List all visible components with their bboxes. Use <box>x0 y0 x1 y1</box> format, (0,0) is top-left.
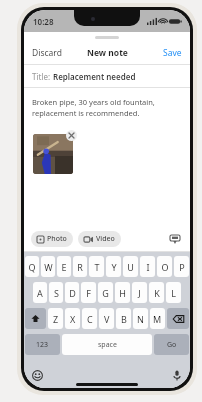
staticText: G <box>102 287 109 299</box>
button[interactable]: F <box>81 282 96 303</box>
staticText: space <box>98 340 117 350</box>
staticText: A <box>37 287 43 299</box>
button[interactable]: K <box>149 282 164 303</box>
staticText: T <box>94 261 100 273</box>
button[interactable]: Dictation <box>171 368 183 383</box>
staticText: J <box>138 287 141 299</box>
staticText: 123 <box>36 340 49 350</box>
staticText: I <box>146 261 150 273</box>
button[interactable]: M <box>150 308 165 329</box>
staticText: E <box>61 261 67 273</box>
staticText: D <box>69 287 76 299</box>
button[interactable]: N <box>133 308 148 329</box>
button[interactable]: H <box>115 282 130 303</box>
staticText: Y <box>111 261 117 273</box>
staticText: Broken pipe, 30 years old fountain, repl… <box>32 97 182 118</box>
button[interactable]: 123 <box>25 334 60 355</box>
button[interactable]: B <box>116 308 131 329</box>
button[interactable]: X <box>65 308 80 329</box>
button[interactable]: D <box>65 282 79 303</box>
staticText: Photo <box>47 234 67 244</box>
button[interactable]: Remove photo <box>66 130 77 141</box>
staticText: S <box>54 287 59 299</box>
button[interactable]: V <box>99 308 114 329</box>
staticText: Save <box>163 47 182 59</box>
button[interactable]: Discard <box>24 44 68 62</box>
staticText: Z <box>53 313 59 325</box>
button[interactable]: T <box>89 256 104 277</box>
button[interactable]: Photo <box>31 231 73 247</box>
staticText: R <box>77 261 83 273</box>
button[interactable]: P <box>174 256 189 277</box>
button[interactable]: Z <box>48 308 63 329</box>
staticText: K <box>154 287 160 299</box>
button[interactable]: Y <box>106 256 121 277</box>
staticText: L <box>171 287 176 299</box>
staticText: U <box>127 261 134 273</box>
staticText: 10:28 <box>33 16 54 27</box>
button[interactable]: Video <box>78 231 121 247</box>
staticText: Go <box>167 340 177 350</box>
staticText: N <box>137 313 144 325</box>
staticText: M <box>153 313 162 325</box>
button[interactable]: Go <box>154 334 189 355</box>
button[interactable]: W <box>41 256 55 277</box>
staticText: W <box>44 261 53 273</box>
button[interactable]: O <box>157 256 172 277</box>
staticText: Video <box>96 234 115 244</box>
staticText: C <box>87 313 93 325</box>
button[interactable]: R <box>73 256 87 277</box>
button[interactable]: J <box>132 282 147 303</box>
staticText: B <box>121 313 127 325</box>
button[interactable]: Attached photo <box>33 134 73 174</box>
button[interactable]: G <box>98 282 113 303</box>
button[interactable]: E <box>57 256 71 277</box>
staticText: Title: <box>32 71 53 82</box>
button[interactable]: Q <box>25 256 39 277</box>
staticText: P <box>179 261 185 273</box>
button[interactable]: Keyboard <box>167 232 183 247</box>
button[interactable]: Emoji <box>30 368 45 383</box>
staticText: V <box>104 313 110 325</box>
staticText: Discard <box>32 47 62 59</box>
staticText: H <box>119 287 126 299</box>
button[interactable]: Save <box>157 44 190 62</box>
staticText: New note <box>87 47 128 59</box>
staticText: F <box>86 287 91 299</box>
staticText: O <box>161 261 169 273</box>
button[interactable]: S <box>49 282 63 303</box>
button[interactable]: I <box>140 256 155 277</box>
staticText: Q <box>28 261 36 273</box>
button[interactable]: U <box>123 256 138 277</box>
button[interactable]: A <box>33 282 47 303</box>
button[interactable]: C <box>82 308 97 329</box>
button[interactable]: Shift <box>25 308 46 329</box>
button[interactable]: space <box>62 334 152 355</box>
staticText: Replacement needed <box>53 71 136 82</box>
button[interactable]: L <box>166 282 181 303</box>
button[interactable]: Backspace <box>167 308 189 329</box>
staticText: X <box>70 313 76 325</box>
